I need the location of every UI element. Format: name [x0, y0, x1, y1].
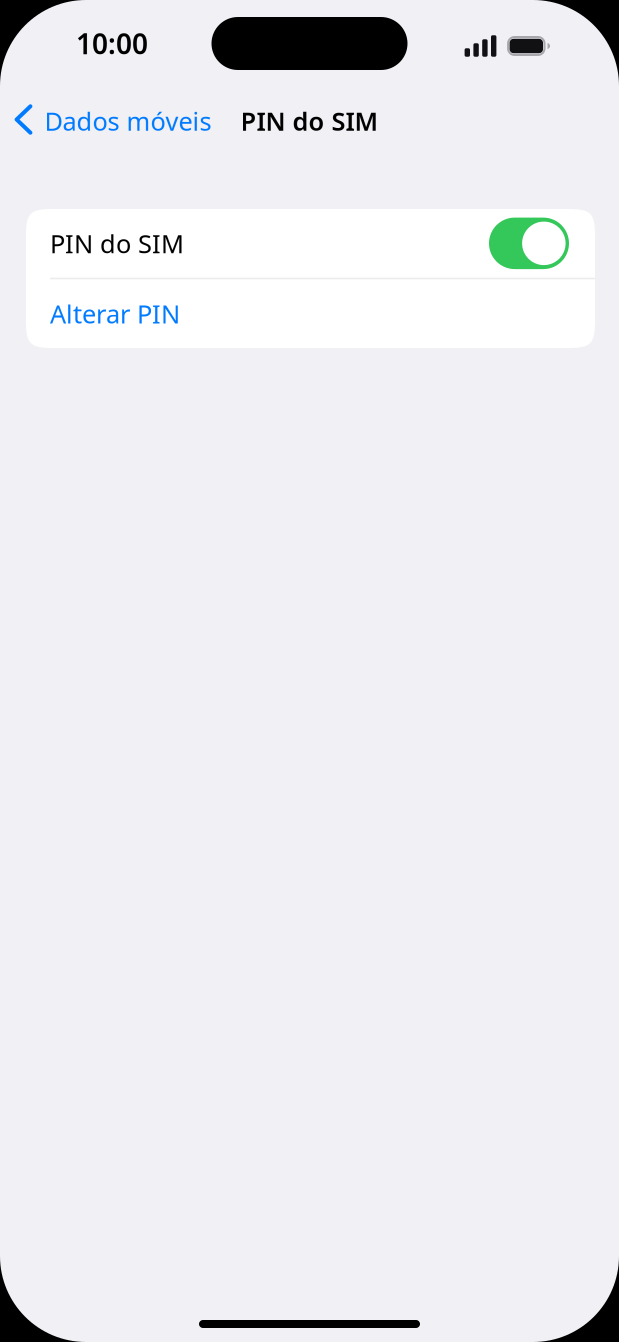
staticText: PIN do SIM — [50, 226, 184, 260]
staticText: Alterar PIN — [50, 297, 180, 330]
button[interactable]: Dados móveis — [0, 70, 211, 172]
button[interactable]: PIN do SIM — [26, 209, 595, 278]
staticText: PIN do SIM — [240, 104, 378, 138]
button[interactable]: Alterar PIN — [26, 279, 595, 348]
staticText: 10:00 — [76, 25, 148, 62]
staticText: Dados móveis — [44, 104, 211, 138]
button[interactable]: PIN do SIM, ativado — [489, 218, 569, 269]
